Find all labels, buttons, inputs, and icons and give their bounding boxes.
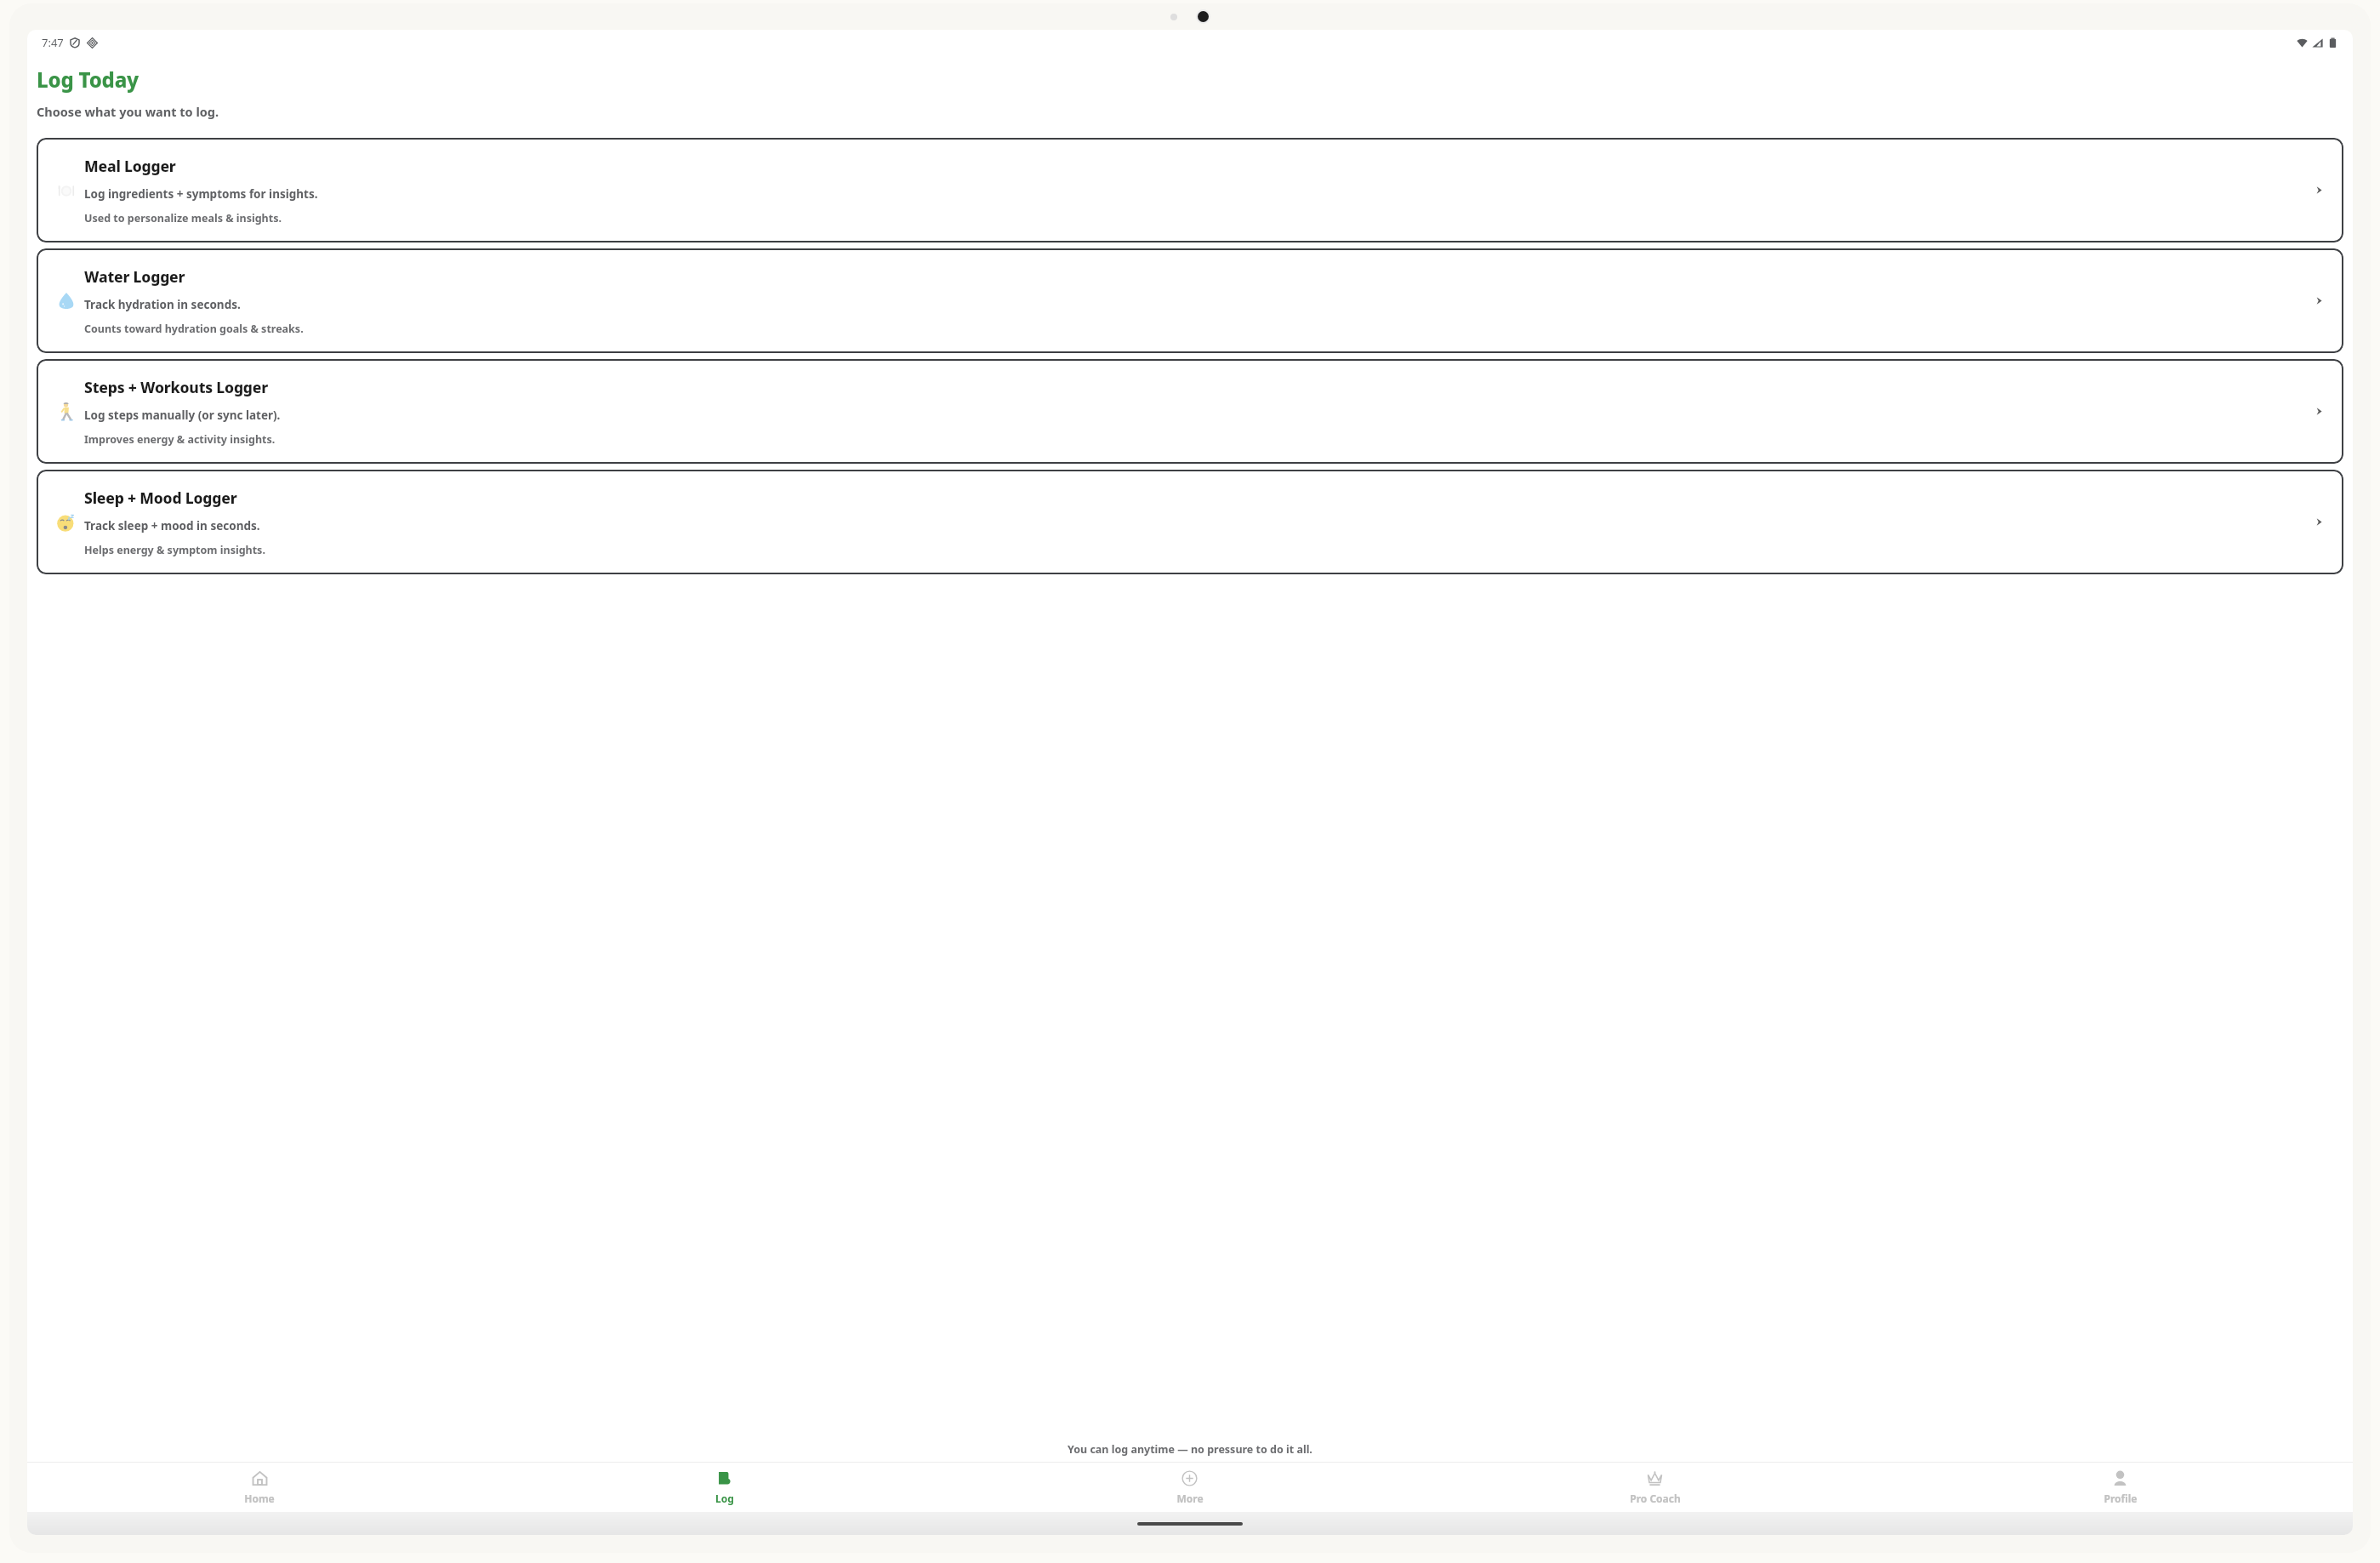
staticText: Log [715, 1492, 734, 1505]
staticText: Sleep + Mood Logger [84, 488, 237, 508]
staticText: Steps + Workouts Logger [84, 377, 269, 397]
staticText: Choose what you want to log. [37, 103, 219, 120]
staticText: Track hydration in seconds. [84, 297, 241, 312]
staticText: Helps energy & symptom insights. [84, 543, 265, 557]
staticText: Used to personalize meals & insights. [84, 211, 282, 225]
staticText: You can log anytime — no pressure to do … [1068, 1442, 1312, 1457]
staticText: Water Logger [84, 266, 185, 287]
button[interactable]: Home [27, 1463, 492, 1512]
staticText: Log Today [37, 66, 139, 94]
button[interactable]: Profile [1887, 1463, 2353, 1512]
staticText: Improves energy & activity insights. [84, 432, 276, 447]
button[interactable]: Meal Logger [37, 138, 2343, 242]
button[interactable]: More [957, 1463, 1422, 1512]
button[interactable]: Sleep + Mood Logger [37, 470, 2343, 574]
button[interactable]: Pro Coach [1422, 1463, 1887, 1512]
staticText: Log steps manually (or sync later). [84, 408, 281, 423]
staticText: Profile [2104, 1492, 2138, 1505]
staticText: 7:47 [42, 35, 64, 50]
staticText: Home [244, 1492, 275, 1505]
staticText: Log ingredients + symptoms for insights. [84, 186, 318, 202]
staticText: More [1176, 1492, 1204, 1505]
staticText: Pro Coach [1630, 1492, 1681, 1505]
button[interactable]: Steps + Workouts Logger [37, 359, 2343, 464]
button[interactable]: Water Logger [37, 248, 2343, 353]
staticText: Counts toward hydration goals & streaks. [84, 322, 304, 336]
staticText: Meal Logger [84, 156, 176, 176]
button[interactable]: Log [492, 1463, 957, 1512]
staticText: Track sleep + mood in seconds. [84, 518, 260, 533]
